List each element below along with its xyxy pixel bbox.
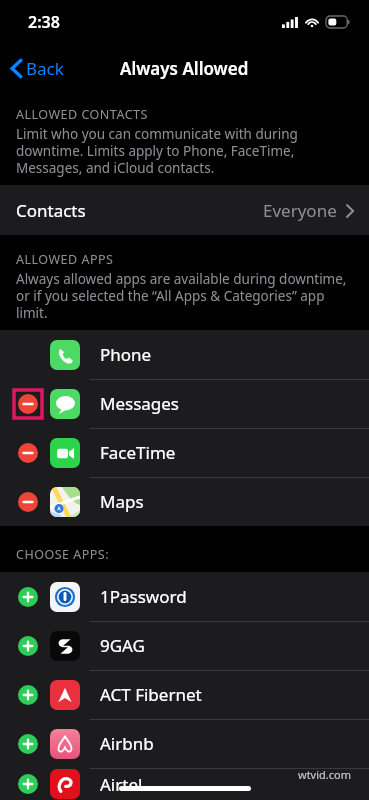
button[interactable]: Add ACT Fibernet [14,681,42,709]
button[interactable]: Add 9GAG [14,632,42,660]
button[interactable]: Add 1Password [14,583,42,611]
button[interactable]: Remove FaceTime [0,428,369,477]
staticText: Phone [100,343,152,366]
button[interactable]: Phone [0,330,369,379]
staticText: FaceTime [100,441,176,464]
button[interactable]: Back [0,50,76,87]
staticText: Limit who you can communicate with durin… [16,125,353,177]
button[interactable]: Add Airtel [0,768,369,800]
staticText: Airtel [100,773,143,796]
staticText: Maps [100,490,144,513]
staticText: Back [26,57,64,80]
staticText: Everyone [263,199,337,222]
staticText: Always Allowed [120,57,249,80]
staticText: ALLOWED CONTACTS [16,106,148,123]
button[interactable]: Remove Messages [14,390,42,418]
staticText: Contacts [16,199,86,222]
button[interactable]: Remove Messages [0,379,369,428]
button[interactable]: Add ACT Fibernet [0,670,369,719]
staticText: ACT Fibernet [100,683,202,706]
button[interactable]: Remove FaceTime [14,439,42,467]
button[interactable]: Remove Maps [14,488,42,516]
button[interactable]: Add 1Password [0,572,369,621]
staticText: 1Password [100,585,187,608]
staticText: Airbnb [100,732,154,755]
staticText: Always allowed apps are available during… [16,270,353,322]
staticText: 2:38 [28,11,60,33]
button[interactable]: Add 9GAG [0,621,369,670]
staticText: 9GAG [100,634,145,657]
staticText: Messages [100,392,180,415]
button[interactable]: Add Airbnb [0,719,369,768]
button[interactable]: Add Airbnb [14,730,42,758]
staticText: wtvid.com [298,767,351,782]
button[interactable]: Remove Maps [0,477,369,526]
staticText: CHOOSE APPS: [16,546,110,563]
button[interactable]: Contacts [0,185,369,235]
button[interactable]: Add Airtel [14,770,42,798]
staticText: ALLOWED APPS [16,251,114,268]
